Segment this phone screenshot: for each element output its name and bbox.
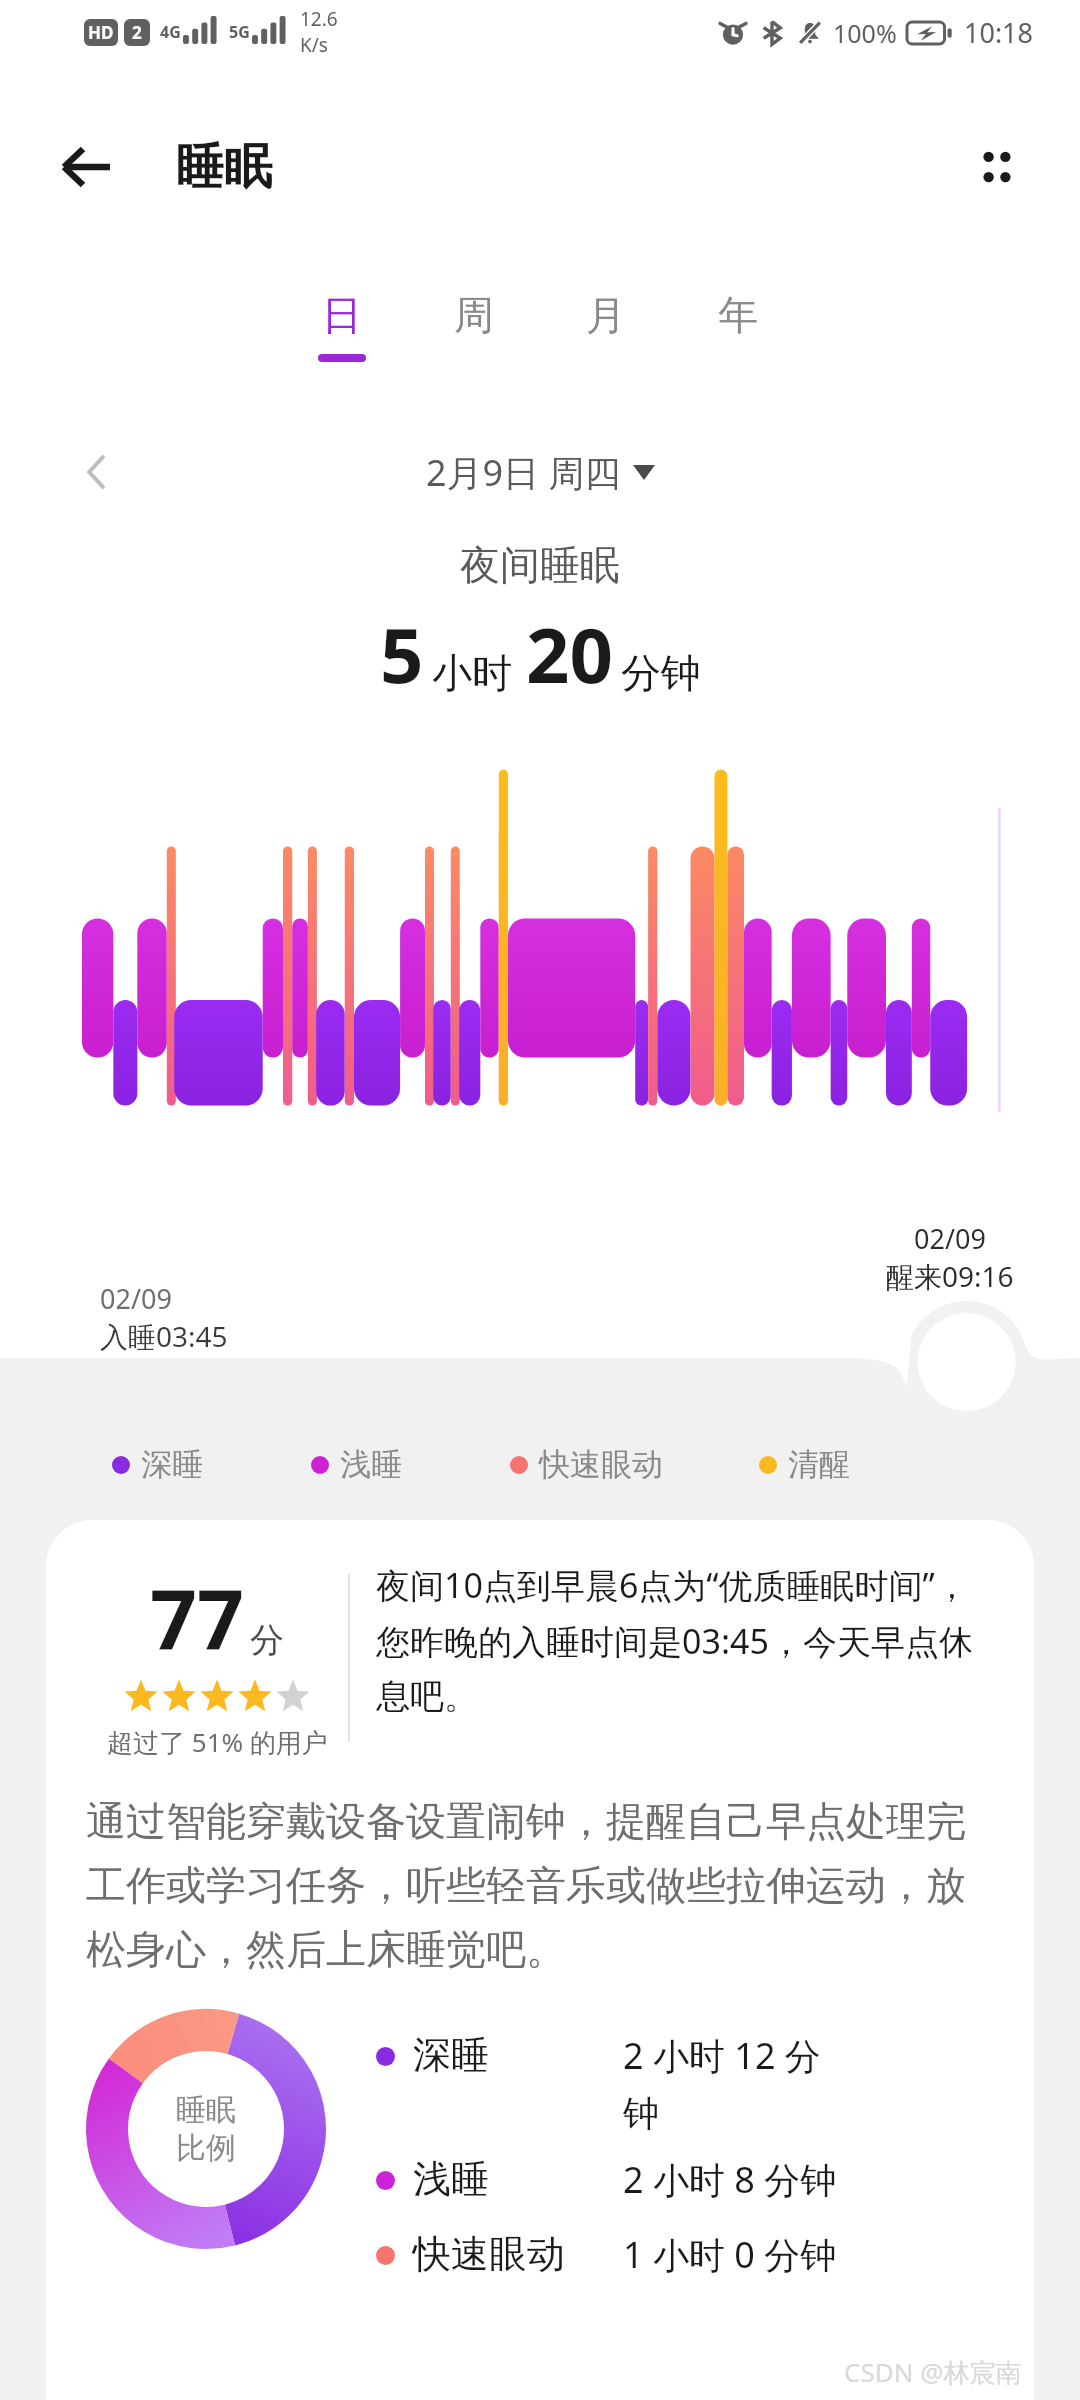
button[interactable]: 周 xyxy=(408,290,540,362)
staticText: 02/09 xyxy=(100,1280,172,1317)
staticText: 睡眠 xyxy=(176,2091,236,2129)
staticText: 深睡 xyxy=(413,2031,623,2079)
button[interactable]: 2月9日 周四 xyxy=(426,448,655,497)
button[interactable]: Add sleep record xyxy=(842,1310,946,1414)
staticText: 日 xyxy=(322,290,362,340)
staticText: 醒来09:16 xyxy=(886,1257,1014,1295)
staticText: 通过智能穿戴设备设置闹钟，提醒自己早点处理完工作或学习任务，听些轻音乐或做些拉伸… xyxy=(86,1796,1000,1975)
staticText: 超过了 51% 的用户 xyxy=(107,1724,328,1760)
staticText: 小时 xyxy=(432,648,512,698)
staticText: 20 xyxy=(526,602,613,706)
staticText: 夜间睡眠 xyxy=(460,540,620,590)
staticText: 2 小时 12 分 钟 xyxy=(623,2031,821,2137)
staticText: 1 小时 0 分钟 xyxy=(623,2230,837,2279)
staticText: HD xyxy=(88,21,114,44)
staticText: 月 xyxy=(586,290,626,340)
staticText: 77 xyxy=(150,1562,244,1674)
staticText: 2 小时 8 分钟 xyxy=(623,2155,837,2204)
staticText: 清醒 xyxy=(788,1445,850,1484)
staticText: 5G xyxy=(229,21,250,43)
staticText: 睡眠 xyxy=(176,137,272,197)
button[interactable]: More options xyxy=(958,128,1036,206)
button[interactable]: 浅睡 xyxy=(311,1445,402,1484)
staticText: 深睡 xyxy=(141,1445,203,1484)
button[interactable]: 深睡 xyxy=(112,1445,203,1484)
staticText: 10:18 xyxy=(964,14,1034,51)
button[interactable]: Previous day xyxy=(64,440,128,504)
staticText: 4G xyxy=(160,21,181,43)
button[interactable]: 深睡 xyxy=(376,2031,1000,2137)
button[interactable]: 月 xyxy=(540,290,672,362)
staticText: 分 xyxy=(250,1619,284,1662)
button[interactable]: 快速眼动 xyxy=(510,1445,663,1484)
staticText: CSDN @林宸南 xyxy=(844,2354,1022,2390)
staticText: 快速眼动 xyxy=(413,2230,623,2278)
staticText: K/s xyxy=(300,32,328,58)
button[interactable]: Back xyxy=(48,129,124,205)
staticText: 100% xyxy=(833,16,897,50)
staticText: 分钟 xyxy=(621,648,701,698)
button[interactable]: 浅睡 xyxy=(376,2155,1000,2204)
button[interactable]: 年 xyxy=(672,290,804,362)
staticText: 浅睡 xyxy=(413,2155,623,2203)
button[interactable]: 快速眼动 xyxy=(376,2230,1000,2279)
button[interactable]: 日 xyxy=(276,290,408,362)
staticText: 年 xyxy=(718,290,758,340)
staticText: 12.6 xyxy=(300,6,338,32)
staticText: 周 xyxy=(454,290,494,340)
staticText: 5 xyxy=(380,602,424,706)
staticText: 比例 xyxy=(176,2129,236,2167)
staticText: 02/09 xyxy=(914,1220,986,1257)
staticText: 入睡03:45 xyxy=(100,1317,228,1355)
staticText: 快速眼动 xyxy=(539,1445,663,1484)
staticText: 2 xyxy=(132,21,142,44)
button[interactable]: 清醒 xyxy=(759,1445,850,1484)
staticText: 2月9日 周四 xyxy=(426,448,621,497)
staticText: 浅睡 xyxy=(340,1445,402,1484)
staticText: 夜间10点到早晨6点为“优质睡眠时间”，您昨晚的入睡时间是03:45，今天早点休… xyxy=(376,1562,1000,1718)
